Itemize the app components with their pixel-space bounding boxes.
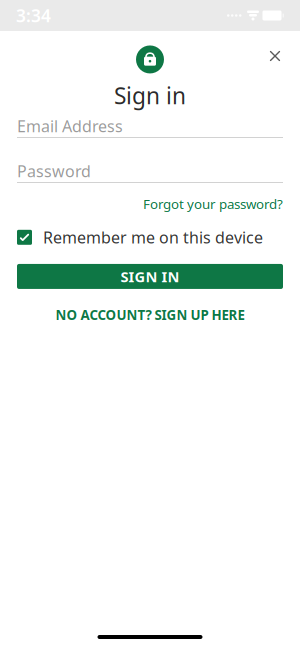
button[interactable]: Close — [258, 39, 292, 73]
staticText: SIGN IN — [120, 267, 179, 286]
staticText: Remember me on this device — [43, 227, 263, 248]
staticText: Forgot your password? — [143, 195, 283, 213]
button[interactable]: Remember me on this device — [17, 224, 283, 251]
staticText: Password — [17, 160, 91, 182]
button[interactable]: NO ACCOUNT? SIGN UP HERE — [17, 302, 283, 328]
staticText: NO ACCOUNT? SIGN UP HERE — [55, 306, 244, 324]
button[interactable]: Forgot your password? — [143, 192, 283, 216]
staticText: Email Address — [17, 115, 123, 137]
staticText: Sign in — [114, 80, 186, 110]
staticText: 3:34 — [16, 4, 51, 27]
button[interactable]: SIGN IN — [17, 264, 283, 289]
